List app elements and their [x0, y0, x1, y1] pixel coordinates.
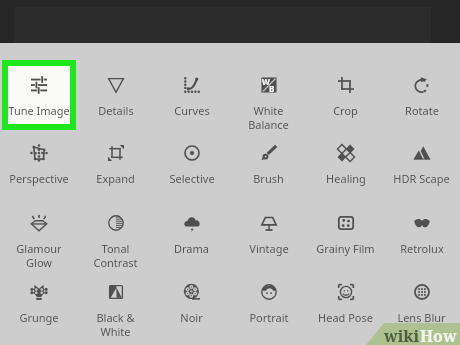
staticText: How	[420, 325, 457, 345]
staticText: Brush	[253, 171, 284, 186]
button[interactable]: Perspective	[0, 128, 77, 198]
button[interactable]: Glamour Glow	[0, 198, 77, 268]
button[interactable]: Details	[77, 60, 154, 130]
button[interactable]: Head Pose	[307, 267, 384, 337]
staticText: Portrait	[249, 310, 289, 325]
staticText: Tonal Contrast	[93, 241, 138, 268]
button[interactable]: W	[230, 60, 307, 130]
staticText: Vintage	[249, 241, 289, 256]
staticText: White Balance	[248, 103, 289, 130]
staticText: Black & White	[96, 310, 135, 337]
staticText: Rotate	[405, 103, 439, 118]
staticText: Tune Image	[8, 103, 70, 118]
staticText: Head Pose	[318, 310, 373, 325]
staticText: B	[269, 83, 275, 94]
button[interactable]: Lens Blur	[383, 267, 460, 337]
button[interactable]: Brush	[230, 128, 307, 198]
staticText: W	[262, 76, 270, 87]
button[interactable]: Healing	[307, 128, 384, 198]
staticText: Selective	[169, 171, 215, 186]
button[interactable]: Portrait	[230, 267, 307, 337]
staticText: Glamour Glow	[16, 241, 62, 268]
staticText: Lens Blur	[397, 310, 446, 325]
staticText: Expand	[96, 171, 135, 186]
button[interactable]: Noir	[153, 267, 230, 337]
staticText: Perspective	[9, 171, 69, 186]
staticText: Retrolux	[400, 241, 444, 256]
button[interactable]: Black & White	[77, 267, 154, 337]
button[interactable]: Drama	[153, 198, 230, 268]
button[interactable]: Selective	[153, 128, 230, 198]
button[interactable]: Rotate	[383, 60, 460, 130]
staticText: HDR Scape	[393, 171, 450, 186]
button[interactable]: Retrolux	[383, 198, 460, 268]
staticText: Curves	[174, 103, 210, 118]
button[interactable]: Expand	[77, 128, 154, 198]
staticText: Crop	[333, 103, 358, 118]
button[interactable]: Grainy Film	[307, 198, 384, 268]
staticText: Noir	[180, 310, 203, 325]
staticText: Details	[98, 103, 134, 118]
button[interactable]: Grunge	[0, 267, 77, 337]
staticText: Grainy Film	[316, 241, 375, 256]
staticText: wiki	[384, 325, 420, 345]
button[interactable]: Curves	[153, 60, 230, 130]
button[interactable]: Tune Image	[0, 60, 77, 130]
staticText: Healing	[326, 171, 366, 186]
button[interactable]: HDR Scape	[383, 128, 460, 198]
button[interactable]: Crop	[307, 60, 384, 130]
staticText: Drama	[174, 241, 209, 256]
button[interactable]: Vintage	[230, 198, 307, 268]
button[interactable]: Tonal Contrast	[77, 198, 154, 268]
staticText: Grunge	[19, 310, 59, 325]
